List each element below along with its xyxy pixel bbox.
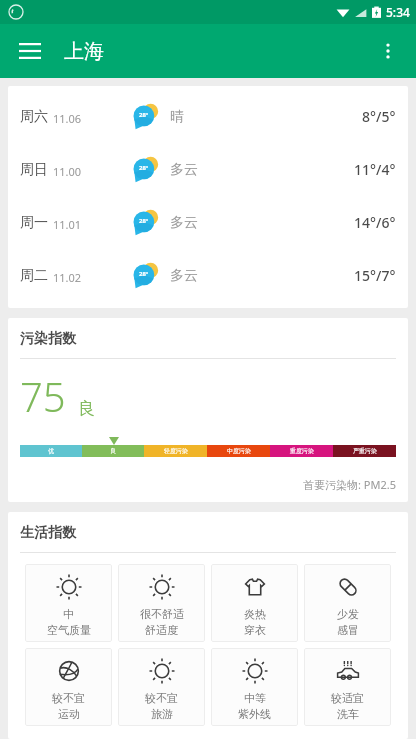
staticText: 感冒 [337,623,359,637]
staticText: 15°/7° [354,266,396,285]
button[interactable]: 周一 [8,196,408,249]
button[interactable]: More options [364,27,412,75]
staticText: 14°/6° [354,213,396,232]
button[interactable]: 周六 [8,90,408,143]
staticText: 轻度污染 [164,447,188,455]
staticText: 中等 [244,691,266,705]
button[interactable]: 少发 [304,564,391,642]
button[interactable]: 周二 [8,249,408,302]
staticText: 晴 [170,108,184,126]
staticText: 紫外线 [238,707,271,721]
staticText: 多云 [170,161,198,179]
staticText: 11.06 [53,111,82,126]
staticText: 空气质量 [47,623,91,637]
staticText: 周六 [20,108,48,126]
staticText: 旅游 [151,707,173,721]
staticText: 较适宜 [331,691,364,705]
staticText: 穿衣 [244,623,266,637]
button[interactable]: 中等 [211,648,298,726]
staticText: 很不舒适 [140,607,184,621]
staticText: 运动 [58,707,80,721]
button[interactable]: Menu [6,27,54,75]
staticText: 优 [48,447,54,455]
button[interactable]: 中 [25,564,112,642]
staticText: 严重污染 [353,447,377,455]
staticText: 多云 [170,267,198,285]
staticText: 11.01 [53,217,82,232]
staticText: 较不宜 [145,691,178,705]
button[interactable]: 炎热 [211,564,298,642]
staticText: 污染指数 [20,330,76,348]
staticText: 舒适度 [145,623,178,637]
staticText: 重度污染 [290,447,314,455]
staticText: 多云 [170,214,198,232]
staticText: 周日 [20,161,48,179]
staticText: 28° [139,111,149,119]
staticText: 11°/4° [354,160,396,179]
staticText: 首要污染物: PM2.5 [303,477,396,492]
staticText: 28° [139,270,149,278]
staticText: 生活指数 [20,524,76,542]
staticText: 上海 [64,39,104,64]
staticText: 少发 [337,607,359,621]
staticText: 75 [20,369,66,423]
button[interactable]: 较适宜 [304,648,391,726]
staticText: 炎热 [244,607,266,621]
staticText: 8°/5° [362,107,396,126]
button[interactable]: 周日 [8,143,408,196]
staticText: 良 [78,398,95,419]
staticText: 洗车 [337,707,359,721]
staticText: 11.00 [53,164,82,179]
button[interactable]: 很不舒适 [118,564,205,642]
staticText: 11.02 [53,270,82,285]
staticText: 周一 [20,214,48,232]
staticText: 较不宜 [52,691,85,705]
staticText: 28° [139,164,149,172]
staticText: 5:34 [386,4,410,20]
button[interactable]: 较不宜 [25,648,112,726]
staticText: 中度污染 [227,447,251,455]
staticText: 中 [63,607,74,621]
staticText: 28° [139,217,149,225]
button[interactable]: 较不宜 [118,648,205,726]
staticText: 周二 [20,267,48,285]
staticText: 良 [110,447,116,455]
